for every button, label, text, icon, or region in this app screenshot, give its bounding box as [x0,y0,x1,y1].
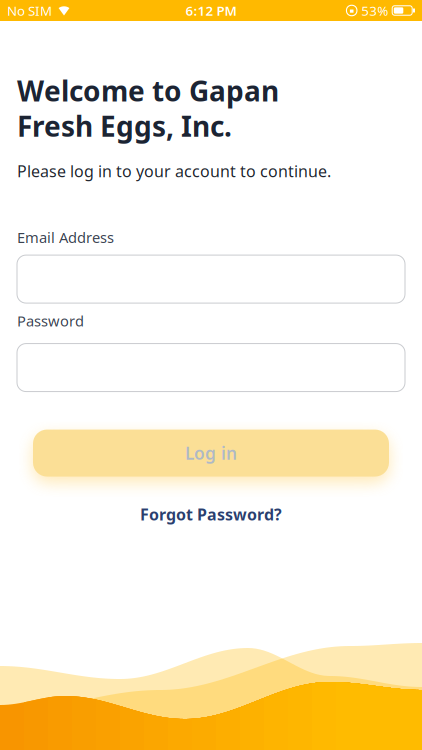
staticText: 6:12 PM [185,2,236,19]
staticText: Password [17,311,84,331]
staticText: Forgot Password? [140,504,282,525]
button[interactable]: Log in [33,430,389,477]
button[interactable]: Forgot Password? [140,504,282,525]
staticText: No SIM [7,2,52,19]
staticText: Log in [185,442,237,465]
staticText: 53% [361,2,388,19]
staticText: Fresh Eggs, Inc. [17,107,232,144]
staticText: Please log in to your account to continu… [17,160,331,182]
staticText: Welcome to Gapan [17,72,279,109]
staticText: Email Address [17,228,114,247]
